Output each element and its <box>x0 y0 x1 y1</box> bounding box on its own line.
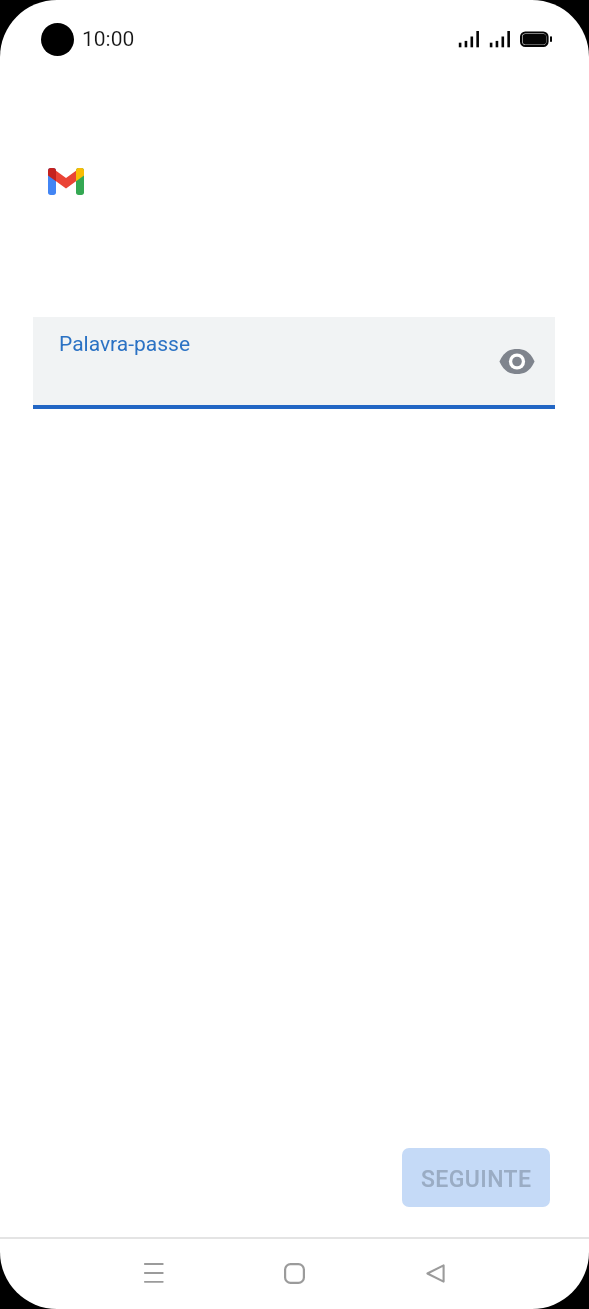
button[interactable]: Ecrã principal <box>262 1241 326 1305</box>
staticText: SEGUINTE <box>421 1166 532 1193</box>
button[interactable]: Recentes <box>122 1241 186 1305</box>
button[interactable]: Palavra-passe <box>33 317 555 405</box>
staticText: 10:00 <box>82 27 135 52</box>
button[interactable]: Anterior <box>403 1241 467 1305</box>
staticText: Palavra-passe <box>59 332 191 357</box>
button[interactable]: Mostrar palavra-passe <box>489 333 545 389</box>
button[interactable]: SEGUINTE <box>402 1148 550 1207</box>
